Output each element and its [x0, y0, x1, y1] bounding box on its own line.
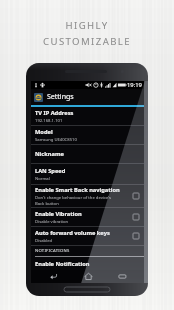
button[interactable]: Auto forward volume keys: [31, 227, 144, 245]
staticText: 19:19: [127, 81, 142, 89]
button[interactable]: Settings: [31, 89, 144, 105]
staticText: Enable Smart Back navigation: [35, 186, 120, 194]
button[interactable]: Nickname: [31, 145, 144, 163]
staticText: 192.168.1.101: [35, 118, 63, 124]
button[interactable]: Model: [31, 126, 144, 144]
button[interactable]: Home: [75, 270, 101, 283]
staticText: Don't change behaviour of the device's B…: [35, 195, 112, 206]
button[interactable]: Back: [40, 270, 66, 283]
button[interactable]: TV IP Address: [31, 107, 144, 125]
staticText: Samsung UE40C8510: [35, 137, 77, 143]
staticText: Settings: [47, 92, 74, 102]
button[interactable]: LAN Speed: [31, 164, 144, 184]
staticText: Auto forward volume keys: [35, 229, 110, 237]
button[interactable]: Recent apps: [109, 270, 135, 283]
staticText: Enable Vibration: [35, 210, 82, 218]
staticText: Model: [35, 128, 53, 136]
staticText: Disabled: [35, 238, 53, 244]
staticText: TV IP Address: [35, 109, 74, 117]
button[interactable]: Enable Smart Back navigation: [31, 185, 144, 207]
staticText: LAN Speed: [35, 167, 66, 175]
button[interactable]: Enable Vibration: [31, 208, 144, 226]
button[interactable]: Enable Notification: [31, 258, 144, 270]
staticText: HIGHLY: [65, 19, 109, 32]
staticText: CUSTOMIZABLE: [43, 35, 131, 48]
staticText: Disable vibration: [35, 219, 69, 225]
staticText: Normal: [35, 176, 50, 182]
staticText: Enable Notification: [35, 260, 90, 268]
staticText: NOTIFICATIONS: [35, 248, 70, 254]
staticText: Nickname: [35, 150, 64, 158]
